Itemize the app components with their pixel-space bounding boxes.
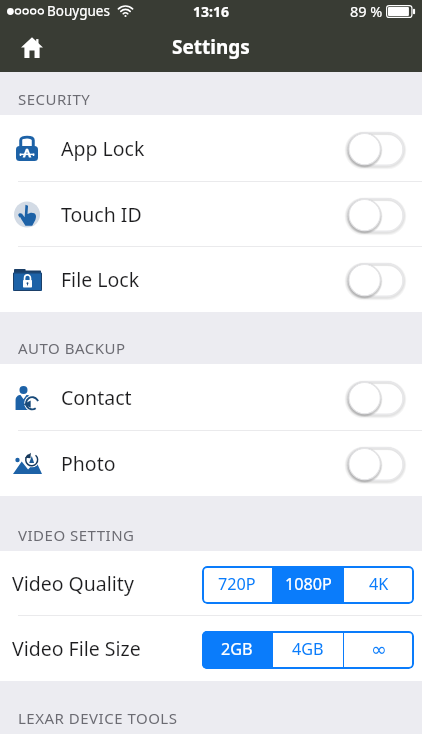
staticText: 4K — [369, 573, 389, 595]
staticText: File Lock — [61, 266, 140, 293]
staticText: AUTO BACKUP — [18, 338, 126, 358]
button[interactable] — [347, 447, 404, 481]
button[interactable] — [347, 263, 404, 297]
staticText: Video File Size — [12, 635, 141, 662]
staticText: Contact — [61, 384, 132, 411]
staticText: ∞ — [371, 638, 387, 660]
staticText: VIDEO SETTING — [18, 525, 135, 545]
staticText: 89 % — [350, 1, 383, 21]
staticText: Photo — [61, 450, 116, 477]
button[interactable] — [347, 381, 404, 415]
staticText: Bouygues — [47, 2, 110, 20]
staticText: 1080P — [285, 573, 332, 595]
button[interactable]: 1080P — [273, 566, 343, 604]
button[interactable]: App Lock — [0, 115, 422, 182]
staticText: App Lock — [61, 135, 145, 162]
button[interactable]: Touch ID — [0, 182, 422, 247]
button[interactable]: 2GB — [202, 631, 272, 669]
button[interactable]: ∞ — [344, 631, 414, 669]
staticText: 720P — [218, 573, 256, 595]
staticText: 13:16 — [193, 2, 229, 21]
staticText: 2GB — [221, 638, 253, 660]
staticText: LEXAR DEVICE TOOLS — [18, 708, 178, 728]
button[interactable]: Home — [12, 27, 52, 67]
staticText: Touch ID — [61, 201, 142, 228]
button[interactable] — [347, 132, 404, 166]
button[interactable] — [347, 198, 404, 232]
button[interactable]: Photo — [0, 431, 422, 496]
button[interactable]: 4GB — [273, 631, 343, 669]
button[interactable]: 4K — [344, 566, 414, 604]
staticText: 4GB — [292, 638, 324, 660]
button[interactable]: 720P — [202, 566, 272, 604]
staticText: SECURITY — [18, 89, 91, 109]
staticText: Video Quality — [12, 570, 134, 597]
staticText: Settings — [172, 34, 250, 60]
button[interactable]: File Lock — [0, 247, 422, 312]
button[interactable]: Contact — [0, 364, 422, 431]
